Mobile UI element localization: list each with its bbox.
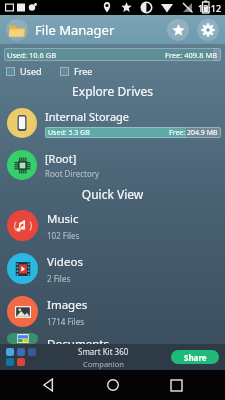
button[interactable]: Videos [0, 247, 225, 290]
button[interactable]: Images [0, 290, 225, 333]
staticText: Used [20, 65, 42, 77]
button[interactable]: Social link [17, 348, 25, 356]
staticText: Quick View [0, 186, 225, 202]
button[interactable]: Free [60, 65, 93, 77]
button[interactable]: Used: 10.6 GB [4, 48, 221, 61]
button[interactable]: App icon [6, 19, 28, 41]
staticText: 1714 Files [47, 316, 85, 327]
staticText: File Manager [35, 21, 115, 39]
staticText: Share [184, 352, 207, 363]
staticText: Smart Kit 360 [78, 346, 129, 357]
staticText: Companion [83, 359, 124, 369]
staticText: [Root] [45, 151, 77, 166]
staticText: Internal Storage [45, 109, 130, 124]
button[interactable]: Share [171, 350, 219, 364]
button[interactable]: Favorites [167, 19, 189, 41]
button[interactable]: Social link [28, 348, 36, 356]
button[interactable]: Used [6, 65, 42, 77]
staticText: 2 Files [47, 273, 71, 284]
button[interactable]: Settings [197, 19, 219, 41]
staticText: Free [74, 65, 93, 77]
staticText: Free: 409.8 MB [165, 50, 218, 60]
staticText: Images [47, 297, 88, 313]
button[interactable]: Back [34, 370, 64, 400]
staticText: Root Directory [45, 168, 100, 179]
button[interactable]: Social link [17, 358, 25, 366]
button[interactable]: Internal Storage [0, 103, 225, 143]
staticText: Documents [47, 336, 109, 344]
button[interactable]: Documents [0, 333, 225, 344]
staticText: 12:12 [198, 2, 222, 14]
staticText: Videos [47, 254, 83, 270]
button[interactable]: Social link [6, 358, 14, 366]
staticText: Used: 5.3 GB [48, 128, 90, 138]
staticText: Explore Drives [0, 83, 225, 99]
staticText: Music [47, 211, 79, 227]
button[interactable]: Recent apps [161, 370, 191, 400]
button[interactable]: Social link [6, 348, 14, 356]
staticText: Free: 204.9 MB [169, 128, 218, 138]
button[interactable]: Music [0, 204, 225, 247]
button[interactable]: Home [98, 370, 128, 400]
button[interactable]: [Root] [0, 147, 225, 183]
staticText: Used: 10.6 GB [7, 50, 57, 60]
staticText: 102 Files [47, 230, 80, 241]
